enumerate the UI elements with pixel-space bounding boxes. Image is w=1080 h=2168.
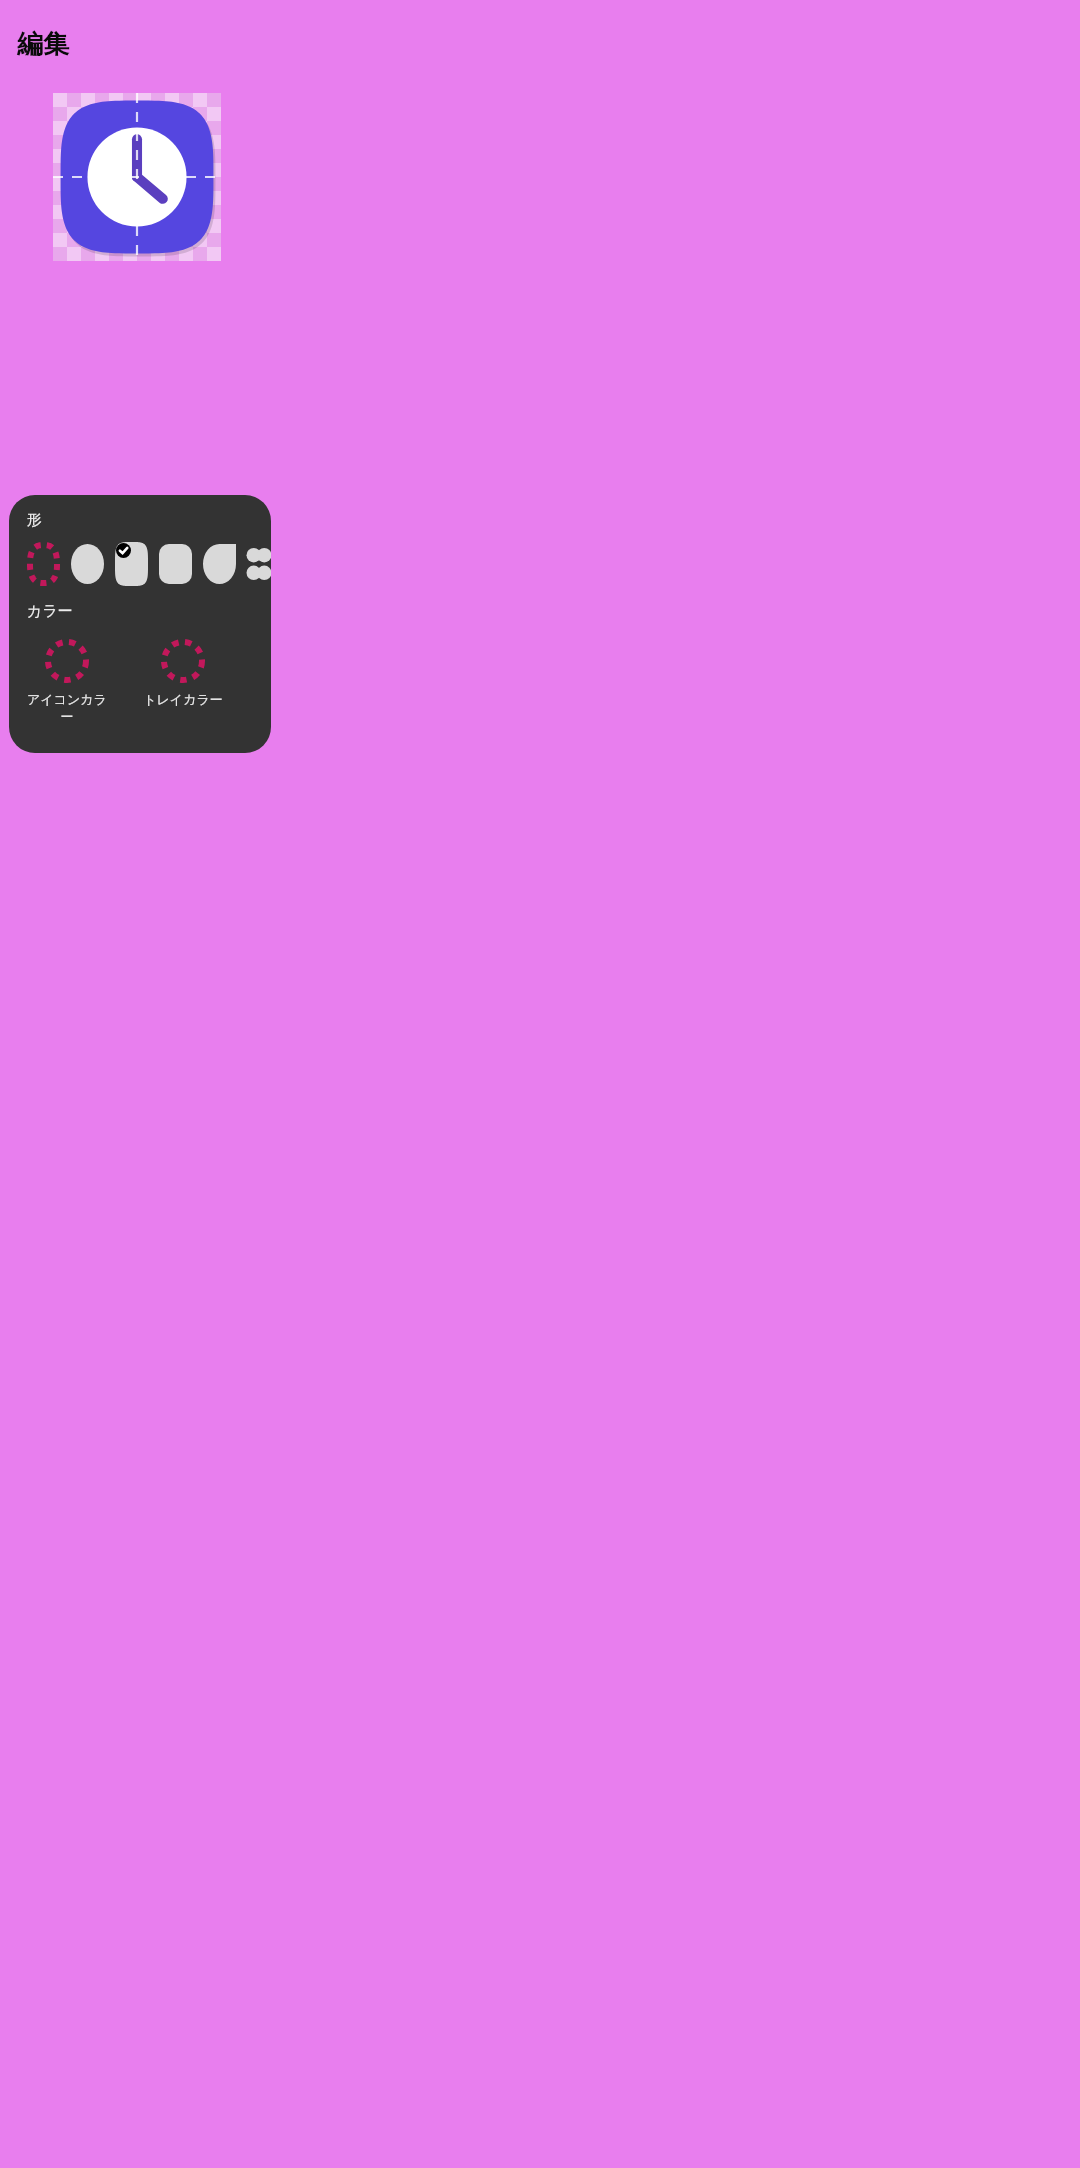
staticText: 形 xyxy=(27,511,42,530)
button[interactable]: Shape option 4 xyxy=(203,542,236,586)
staticText: 編集 xyxy=(17,28,69,61)
staticText: カラー xyxy=(27,602,73,621)
button[interactable]: Shape option 2 xyxy=(115,542,148,586)
button[interactable]: Shape option 3 xyxy=(159,542,192,586)
button[interactable]: アイコンカラー xyxy=(27,639,107,725)
staticText: トレイカラー xyxy=(143,691,223,707)
button[interactable]: Shape option 1 xyxy=(71,542,104,586)
button[interactable]: トレイカラー xyxy=(143,639,223,707)
other: Icon preview xyxy=(53,93,221,261)
staticText: アイコンカラー xyxy=(27,691,107,725)
button[interactable]: Shape option 5 xyxy=(247,542,271,586)
button[interactable]: Shape option 0 xyxy=(27,542,60,586)
